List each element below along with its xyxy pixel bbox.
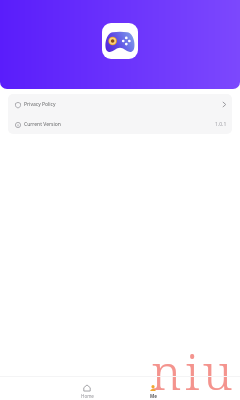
button[interactable]: Current Version [8,114,232,134]
staticText: Current Version [24,121,61,128]
staticText: Me [150,393,157,399]
staticText: 1.0.1 [215,121,227,128]
button[interactable]: Privacy Policy [8,94,232,114]
button[interactable]: Me [120,384,186,399]
button[interactable]: Home [54,384,120,399]
staticText: niu [151,339,236,400]
staticText: Privacy Policy [24,101,56,108]
staticText: Home [81,393,94,399]
other: App icon [102,23,138,59]
